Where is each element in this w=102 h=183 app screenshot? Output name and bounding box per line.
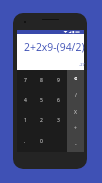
button[interactable]: 1 xyxy=(17,110,33,131)
staticText: + xyxy=(74,125,77,132)
staticText: -27 xyxy=(79,62,85,67)
button[interactable]: 6 xyxy=(50,90,67,110)
button[interactable]: 9 xyxy=(50,70,67,90)
staticText: 6 xyxy=(57,97,60,104)
staticText: 1 xyxy=(24,117,27,124)
staticText: 7 xyxy=(24,77,27,84)
button[interactable]: 0 xyxy=(33,131,50,152)
staticText: 9 xyxy=(57,77,60,84)
staticText: 8 xyxy=(40,77,43,84)
button[interactable]: + xyxy=(67,120,84,136)
staticText: 4 xyxy=(24,97,27,104)
button[interactable]: 2 xyxy=(33,110,50,131)
staticText: 3 xyxy=(57,117,60,124)
button[interactable]: . xyxy=(17,131,33,152)
button[interactable]: 3 xyxy=(50,110,67,131)
staticText: - xyxy=(75,141,77,148)
staticText: 5 xyxy=(40,97,43,104)
staticText: . xyxy=(24,138,26,145)
button[interactable]: X xyxy=(67,104,84,120)
button[interactable]: 7 xyxy=(17,70,33,90)
button[interactable]: 4 xyxy=(17,90,33,110)
staticText: / xyxy=(75,92,77,99)
staticText: 2 xyxy=(40,117,43,124)
staticText: X xyxy=(74,109,77,116)
button[interactable]: Backspace xyxy=(67,70,84,87)
button[interactable]: 8 xyxy=(33,70,50,90)
button[interactable]: - xyxy=(67,136,84,152)
button[interactable]: 5 xyxy=(33,90,50,110)
staticText: 2+2x9-(94/2) xyxy=(24,40,85,54)
button[interactable]: / xyxy=(67,87,84,104)
staticText: 0 xyxy=(40,138,43,145)
